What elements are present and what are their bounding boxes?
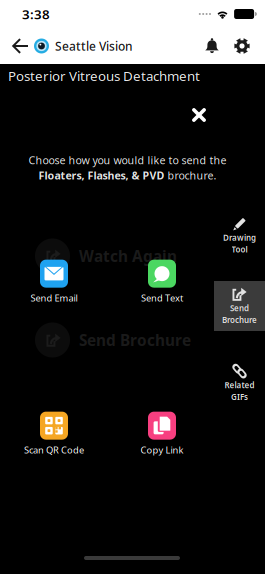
button[interactable]: Close [184, 100, 214, 130]
button[interactable]: Back [6, 29, 34, 63]
button[interactable]: Copy Link [108, 411, 216, 457]
button[interactable]: Scan QR Code [0, 411, 108, 457]
button[interactable]: Notifications [197, 29, 227, 63]
staticText: GIFs [231, 391, 248, 402]
button[interactable]: Send Email [0, 259, 108, 305]
staticText: Send Text [141, 292, 183, 304]
staticText: Send Email [30, 292, 77, 304]
staticText: Posterior Vitreous Detachment [8, 67, 200, 85]
staticText: Brochure [222, 314, 257, 325]
staticText: Choose how you would like to send the [28, 153, 226, 167]
staticText: Drawing [223, 232, 256, 243]
staticText: Send Brochure [79, 330, 191, 350]
staticText: 3:38 [22, 5, 50, 23]
button[interactable]: Send Text [108, 259, 216, 305]
staticText: brochure. [164, 168, 216, 182]
staticText: Seattle Vision [55, 38, 133, 54]
staticText: Copy Link [140, 444, 183, 456]
button[interactable]: Send [214, 281, 265, 331]
staticText: Tool [231, 244, 247, 255]
staticText: Related [224, 380, 254, 390]
staticText: Send [230, 303, 249, 313]
button[interactable]: Settings [227, 29, 257, 63]
staticText: Watch Again [79, 246, 177, 266]
staticText: Floaters, Flashes, & PVD [38, 168, 164, 182]
staticText: Scan QR Code [24, 444, 84, 456]
button[interactable]: Related [214, 358, 265, 408]
button[interactable]: Drawing [214, 211, 265, 261]
